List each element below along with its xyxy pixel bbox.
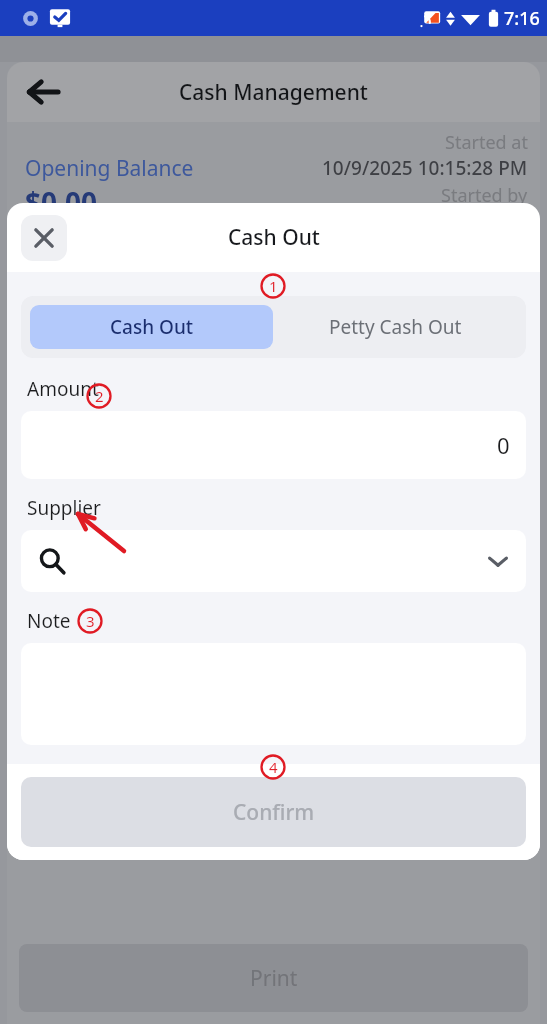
button[interactable]: Close (21, 215, 67, 261)
staticText: 7:16 (504, 6, 540, 31)
staticText: $0.00 (25, 183, 97, 221)
staticText: 4 (269, 757, 278, 777)
staticText: 0 (497, 430, 510, 460)
staticText: Confirm (233, 798, 315, 827)
staticText: Note (27, 608, 71, 634)
button[interactable]: Cash Out (30, 305, 273, 349)
staticText: Started by (441, 183, 528, 208)
staticText: Petty Cash Out (329, 314, 462, 340)
staticText: 2 (95, 386, 104, 406)
button[interactable] (21, 530, 526, 592)
button[interactable]: Petty Cash Out (273, 305, 517, 349)
staticText: 10/9/2025 10:15:28 PM (322, 155, 528, 181)
button[interactable]: 0 (21, 411, 526, 479)
staticText: Cash Out (110, 314, 194, 340)
staticText: Cash Management (179, 78, 368, 107)
staticText: 3 (86, 611, 95, 631)
staticText: 1 (269, 276, 278, 296)
staticText: Cash Out (228, 223, 320, 252)
button[interactable]: Back (25, 74, 61, 110)
staticText: Supplier (27, 495, 101, 521)
staticText: Print (250, 964, 298, 993)
button[interactable]: Confirm (21, 777, 526, 847)
staticText: Started at (445, 130, 528, 155)
staticText: Opening Balance (25, 154, 194, 183)
staticText: Amount (27, 376, 99, 402)
